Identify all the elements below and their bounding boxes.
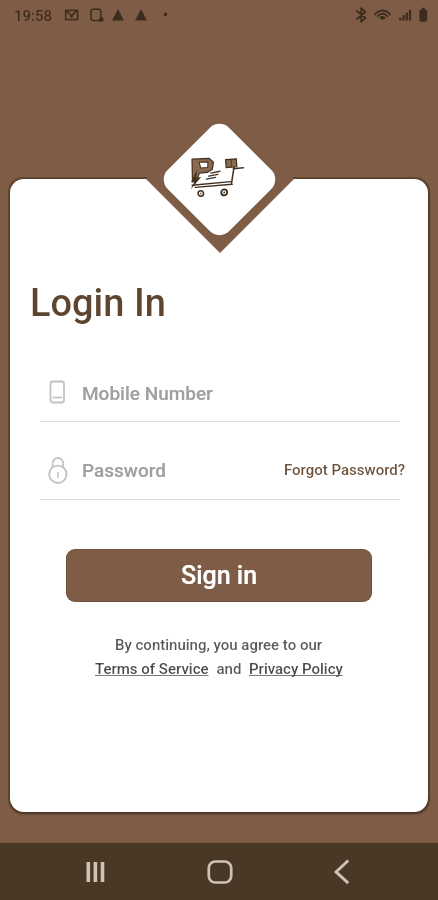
staticText: By continuing, you agree to our (115, 636, 323, 654)
button[interactable]: Privacy Policy (249, 660, 343, 678)
staticText: 19:58 (14, 7, 53, 25)
staticText: Password (82, 459, 166, 481)
button[interactable]: Sign in (66, 549, 372, 602)
button[interactable]: Forgot Password? (284, 456, 410, 484)
staticText: Mobile Number (82, 382, 213, 404)
button[interactable]: Back (298, 843, 386, 900)
staticText: and (209, 660, 249, 678)
button[interactable]: Home (175, 843, 264, 900)
staticText: Login In (30, 281, 166, 326)
button[interactable]: Mobile Number (40, 378, 400, 418)
button[interactable]: Terms of Service (95, 660, 209, 678)
button[interactable]: Recent apps (52, 843, 140, 900)
staticText: Sign in (181, 561, 258, 590)
staticText: Forgot Password? (284, 461, 406, 479)
button[interactable]: Password (40, 455, 270, 495)
